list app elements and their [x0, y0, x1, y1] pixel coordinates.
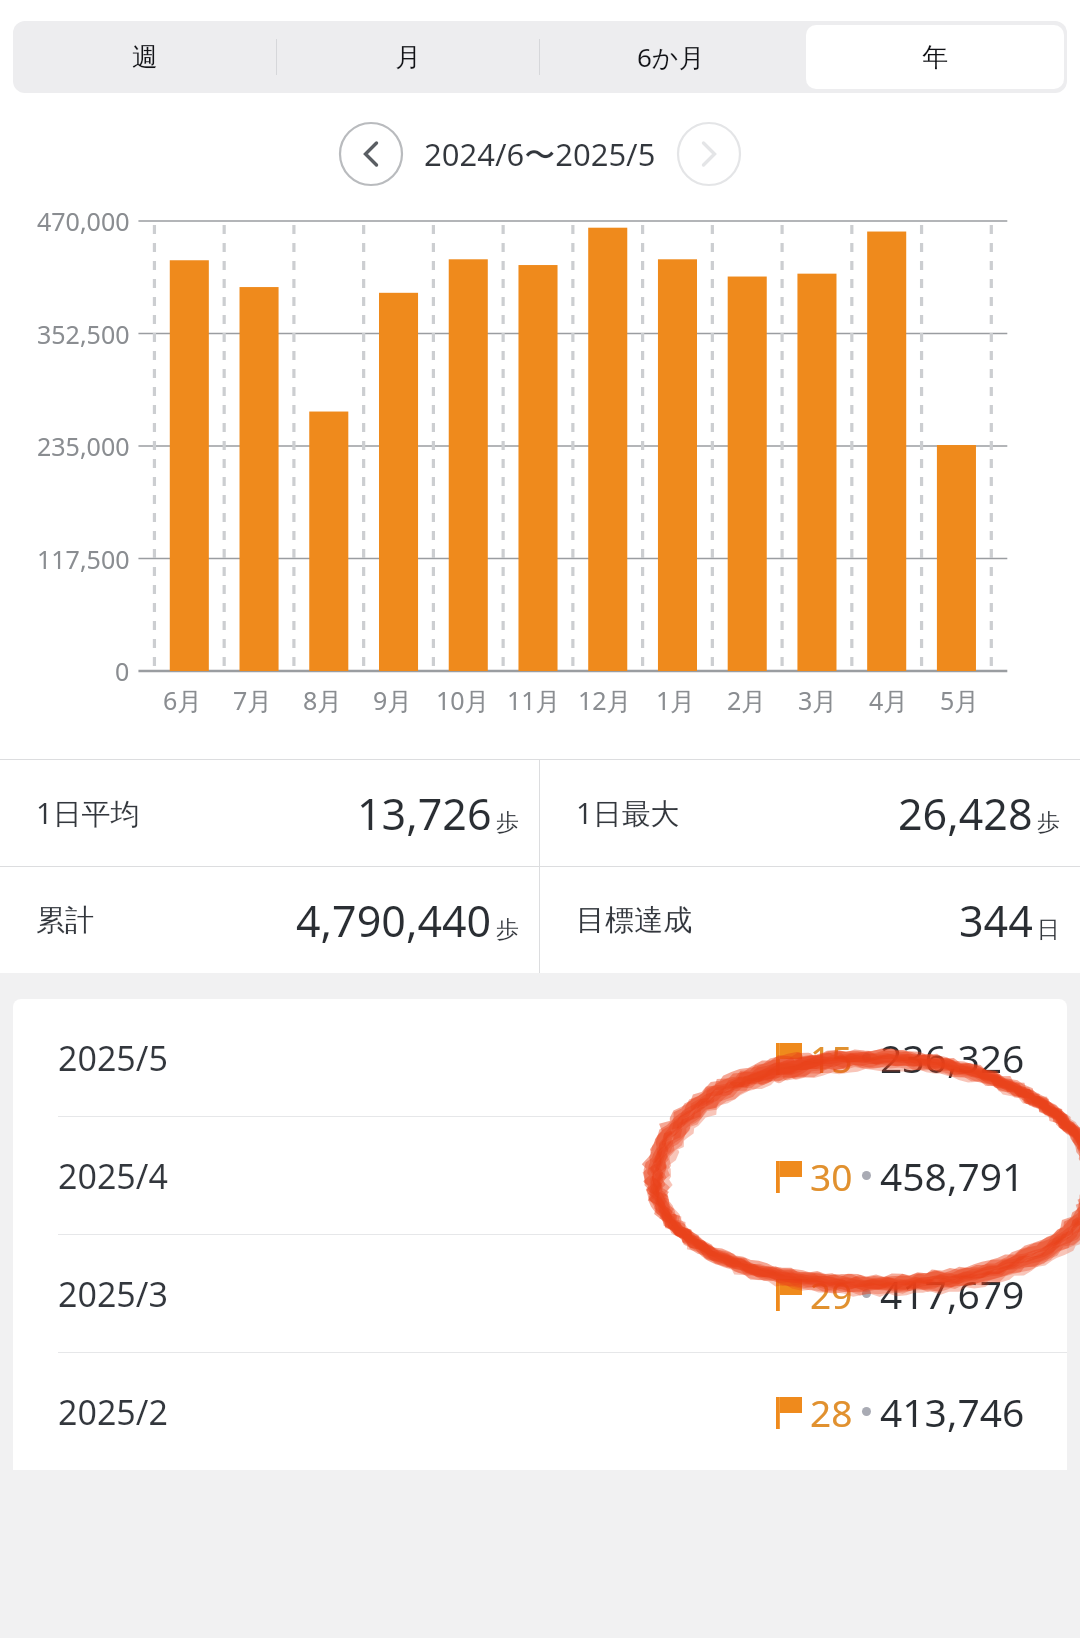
- staticText: 12月: [578, 683, 632, 717]
- button[interactable]: 累計: [0, 867, 539, 973]
- staticText: 417,679: [880, 1267, 1025, 1320]
- staticText: 2025/2: [58, 1389, 168, 1435]
- staticText: 2024/6〜2025/5: [424, 133, 656, 175]
- staticText: 29: [810, 1269, 853, 1319]
- staticText: 13,726: [357, 784, 492, 843]
- button[interactable]: Next period: [676, 121, 742, 187]
- staticText: 344: [959, 891, 1033, 950]
- staticText: 2025/3: [58, 1271, 168, 1317]
- staticText: 15: [810, 1033, 853, 1083]
- staticText: 日: [1037, 915, 1060, 944]
- staticText: 470,000: [37, 204, 130, 238]
- button[interactable]: 1日平均: [0, 760, 539, 866]
- staticText: 4,790,440: [296, 891, 492, 950]
- button[interactable]: 2025/5: [13, 999, 1067, 1116]
- staticText: 年: [922, 41, 948, 74]
- staticText: 7月: [233, 683, 273, 717]
- button[interactable]: 2025/4: [13, 1117, 1067, 1234]
- button[interactable]: 年: [803, 21, 1067, 93]
- staticText: 2025/4: [58, 1153, 168, 1199]
- staticText: 10月: [436, 683, 490, 717]
- staticText: 週: [132, 41, 158, 74]
- staticText: 117,500: [37, 542, 130, 576]
- staticText: 4月: [869, 683, 909, 717]
- staticText: 1日平均: [36, 793, 140, 833]
- staticText: 0: [115, 654, 130, 688]
- staticText: 2月: [727, 683, 767, 717]
- staticText: 352,500: [37, 317, 130, 351]
- staticText: 28: [810, 1387, 853, 1437]
- staticText: 413,746: [880, 1385, 1025, 1438]
- button[interactable]: 2025/3: [13, 1235, 1067, 1352]
- staticText: 235,000: [37, 429, 130, 463]
- staticText: 歩: [496, 808, 519, 837]
- staticText: 2025/5: [58, 1035, 168, 1081]
- staticText: 9月: [373, 683, 413, 717]
- staticText: 月: [395, 41, 421, 74]
- staticText: 目標達成: [576, 902, 692, 939]
- button[interactable]: 2025/2: [13, 1353, 1067, 1470]
- staticText: 歩: [1037, 808, 1060, 837]
- staticText: 5月: [940, 683, 980, 717]
- button[interactable]: 6か月: [539, 21, 803, 93]
- staticText: 1月: [656, 683, 696, 717]
- staticText: 累計: [36, 902, 94, 939]
- button[interactable]: 週: [13, 21, 276, 93]
- staticText: 歩: [496, 915, 519, 944]
- staticText: 26,428: [898, 784, 1033, 843]
- staticText: 3月: [798, 683, 838, 717]
- staticText: 11月: [507, 683, 561, 717]
- button[interactable]: 目標達成: [540, 867, 1080, 973]
- button[interactable]: 1日最大: [540, 760, 1080, 866]
- button[interactable]: Previous period: [338, 121, 404, 187]
- staticText: 8月: [303, 683, 343, 717]
- staticText: 30: [810, 1151, 853, 1201]
- staticText: 6か月: [637, 39, 705, 75]
- staticText: 6月: [163, 683, 203, 717]
- staticText: 1日最大: [576, 793, 680, 833]
- staticText: 458,791: [880, 1149, 1025, 1202]
- staticText: 236,326: [880, 1031, 1025, 1084]
- button[interactable]: 月: [276, 21, 539, 93]
